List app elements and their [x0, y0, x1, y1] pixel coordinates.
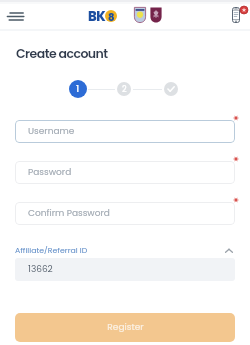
button[interactable]: Menu — [4, 5, 26, 27]
staticText: 2 — [122, 84, 127, 95]
staticText: Password — [28, 166, 72, 179]
button[interactable]: Password — [15, 161, 235, 184]
staticText: Affiliate/Referral ID — [15, 245, 88, 256]
staticText: BK — [88, 7, 106, 25]
button[interactable]: Download app — [229, 4, 247, 22]
staticText: 8 — [108, 10, 115, 22]
staticText: 13662 — [28, 263, 53, 276]
staticText: Confirm Password — [28, 207, 110, 220]
button[interactable]: 1 — [69, 80, 87, 98]
staticText: Username — [28, 125, 75, 138]
button[interactable]: Username — [15, 120, 235, 143]
button[interactable]: 13662 — [15, 258, 235, 281]
button[interactable]: Affiliate/Referral ID — [15, 243, 235, 258]
button[interactable]: Confirm Password — [15, 202, 235, 225]
button[interactable]: 2 — [117, 82, 131, 96]
staticText: Register — [107, 321, 144, 334]
button[interactable]: Register — [15, 313, 235, 342]
button[interactable]: Completed step — [164, 82, 178, 96]
staticText: Create account — [16, 45, 108, 62]
staticText: 1 — [76, 83, 80, 96]
